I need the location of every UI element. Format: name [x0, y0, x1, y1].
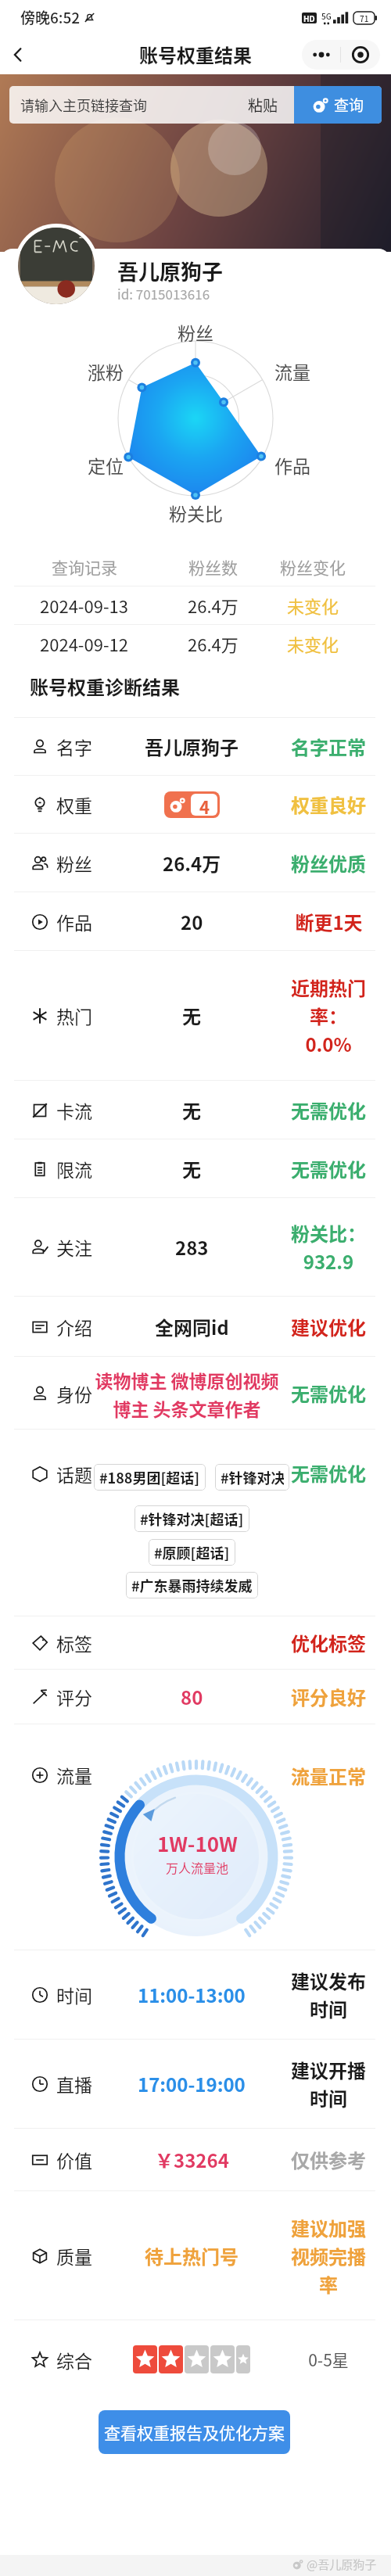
staticText: 热门 [56, 1003, 92, 1028]
staticText: 未变化 [287, 631, 339, 656]
button[interactable]: 作品 [0, 892, 391, 950]
staticText: 查看权重报告及优化方案 [104, 2420, 285, 2444]
staticText: 无需优化 [291, 1096, 366, 1124]
staticText: 无需优化 [291, 1459, 366, 1487]
button[interactable]: More options [302, 40, 380, 70]
staticText: 全网同id [155, 1313, 229, 1340]
staticText: 请输入主页链接查询 [20, 95, 147, 115]
staticText: 无需优化 [291, 1155, 366, 1182]
button[interactable]: 粉丝 [0, 834, 391, 892]
staticText: 评分 [56, 1684, 92, 1710]
button[interactable]: 2024-09-12 [0, 625, 391, 662]
staticText: 涨粉 [88, 358, 124, 382]
staticText: 流量正常 [291, 1762, 366, 1789]
staticText: 无需优化 [291, 1379, 366, 1407]
button[interactable]: 标签 [0, 1616, 391, 1669]
staticText: HD [303, 13, 315, 23]
staticText: 作品 [274, 452, 310, 475]
button[interactable]: 关注 [0, 1198, 391, 1296]
staticText: 待上热门号 [145, 2242, 239, 2269]
staticText: 5G [321, 10, 332, 21]
staticText: #原顾[超话] [154, 1542, 230, 1562]
staticText: 流量 [274, 358, 310, 382]
button[interactable]: 热门 [0, 951, 391, 1080]
staticText: 71 [360, 13, 369, 23]
staticText: 粉丝数 [188, 555, 238, 579]
staticText: 查询记录 [52, 555, 117, 579]
button[interactable]: 权重 [0, 776, 391, 833]
staticText: 流量 [56, 1762, 92, 1788]
staticText: 账号权重诊断结果 [30, 673, 180, 700]
staticText: 定位 [88, 452, 124, 475]
staticText: 粘贴 [248, 94, 278, 116]
staticText: #针锋对决[超话] [140, 1509, 244, 1529]
button[interactable]: 流量 [0, 1724, 391, 1950]
staticText: @吾儿原狗子 [307, 2556, 377, 2573]
button[interactable]: 评分 [0, 1670, 391, 1724]
button[interactable]: 质量 [0, 2191, 391, 2319]
staticText: 无 [182, 1002, 201, 1029]
button[interactable]: 粘贴 [232, 86, 294, 124]
button[interactable]: 综合 [0, 2320, 391, 2398]
staticText: 介绍 [56, 1314, 92, 1340]
staticText: 权重良好 [291, 791, 366, 818]
staticText: 标签 [56, 1630, 92, 1656]
button[interactable]: 身份 [0, 1357, 391, 1429]
button[interactable]: 直播 [0, 2040, 391, 2128]
staticText: 4 [199, 794, 210, 816]
staticText: 80 [181, 1683, 203, 1710]
staticText: 2024-09-13 [40, 593, 128, 618]
staticText: 11:00-13:00 [138, 1981, 246, 2008]
staticText: 时间 [56, 1982, 92, 2007]
staticText: 价值 [56, 2147, 92, 2172]
button[interactable]: 名字 [0, 718, 391, 775]
staticText: 26.4万 [163, 849, 221, 877]
staticText: 优化标签 [291, 1629, 366, 1656]
staticText: 直播 [56, 2071, 92, 2097]
staticText: 粉丝 [178, 319, 213, 343]
staticText: 评分良好 [291, 1683, 366, 1710]
button[interactable]: 查询 [294, 86, 382, 124]
staticText: 吾儿原狗子 [145, 733, 239, 760]
staticText: 粉关比 [169, 500, 223, 523]
staticText: 综合 [56, 2347, 92, 2373]
staticText: 查询 [334, 94, 364, 116]
staticText: id: 7015013616 [117, 284, 210, 303]
button[interactable]: 话题 [0, 1430, 391, 1616]
button[interactable]: 限流 [0, 1139, 391, 1197]
button[interactable]: 卡流 [0, 1081, 391, 1139]
staticText: 傍晚6:52 [20, 6, 81, 28]
staticText: 作品 [56, 909, 92, 935]
staticText: 读物博主 微博原创视频博主 头条文章作者 [94, 1367, 280, 1421]
staticText: #广东暴雨持续发威 [131, 1575, 253, 1595]
button[interactable]: 查看权重报告及优化方案 [99, 2410, 290, 2454]
staticText: 建议发布时间 [289, 1967, 368, 2022]
staticText: 名字正常 [291, 733, 366, 760]
staticText: 283 [175, 1233, 209, 1261]
staticText: 2024-09-12 [40, 631, 128, 656]
staticText: 建议优化 [291, 1313, 366, 1340]
staticText: 无 [182, 1155, 201, 1182]
button[interactable]: 时间 [0, 1950, 391, 2039]
staticText: 限流 [56, 1156, 92, 1182]
button[interactable]: 2024-09-13 [0, 587, 391, 624]
staticText: 26.4万 [188, 593, 239, 618]
staticText: 名字 [56, 734, 92, 759]
staticText: 粉丝 [56, 850, 92, 876]
staticText: 吾儿原狗子 [117, 256, 223, 286]
staticText: 未变化 [287, 593, 339, 618]
button[interactable]: 价值 [0, 2129, 391, 2190]
staticText: ￥33264 [155, 2146, 229, 2173]
staticText: 20 [181, 908, 203, 935]
staticText: 1W-10W [157, 1828, 238, 1858]
staticText: 话题 [56, 1461, 92, 1487]
button[interactable]: Back [0, 37, 36, 73]
staticText: 关注 [56, 1234, 92, 1260]
staticText: 卡流 [56, 1097, 92, 1123]
staticText: 断更1天 [295, 908, 363, 935]
staticText: 权重 [56, 791, 92, 817]
staticText: 仅供参考 [291, 2146, 366, 2173]
staticText: 账号权重结果 [139, 41, 252, 68]
button[interactable]: 介绍 [0, 1297, 391, 1356]
staticText: 26.4万 [188, 631, 239, 656]
